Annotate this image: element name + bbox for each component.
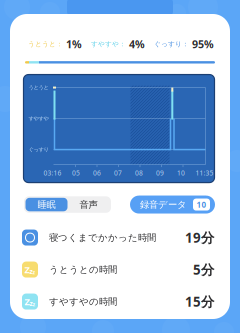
staticText: 03:16 — [43, 169, 61, 177]
staticText: 1% — [66, 37, 82, 51]
staticText: すやすやの時間 — [49, 296, 117, 307]
staticText: 09 — [156, 169, 164, 177]
staticText: 15分 — [185, 293, 214, 310]
staticText: z — [29, 267, 32, 276]
staticText: 05 — [72, 169, 80, 177]
staticText: 07 — [114, 169, 122, 177]
staticText: 4% — [129, 37, 145, 51]
staticText: 録音データ — [140, 199, 187, 210]
staticText: 寝つくまでかかった時間 — [49, 232, 156, 243]
staticText: z — [32, 301, 35, 308]
staticText: Z — [24, 263, 29, 276]
staticText: 19分 — [185, 229, 214, 246]
button[interactable]: Z — [10, 254, 230, 286]
staticText: z — [29, 299, 32, 308]
staticText: Z — [24, 295, 29, 308]
staticText: うとうとの時間 — [49, 264, 117, 275]
staticText: 睡眠 — [37, 199, 55, 210]
staticText: ぐっすり： — [154, 40, 189, 48]
staticText: 10 — [196, 199, 206, 210]
staticText: うとうと — [28, 84, 48, 91]
staticText: 10 — [177, 169, 185, 177]
staticText: 5分 — [193, 261, 214, 278]
staticText: 95% — [192, 37, 214, 51]
staticText: すやすや — [28, 115, 48, 122]
button[interactable]: Z — [10, 286, 230, 318]
staticText: 08 — [135, 169, 143, 177]
staticText: ぐっすり — [28, 146, 48, 153]
staticText: 11:35 — [195, 169, 213, 177]
button[interactable]: 音声 — [67, 198, 109, 211]
button[interactable]: 寝つくまでかかった時間 — [10, 222, 230, 254]
staticText: 音声 — [79, 199, 97, 210]
staticText: 06 — [93, 169, 101, 177]
button[interactable]: 録音データ — [130, 196, 215, 214]
staticText: z — [32, 269, 35, 276]
button[interactable]: 睡眠 — [25, 198, 67, 211]
staticText: うとうと： — [28, 40, 63, 48]
staticText: すやすや： — [91, 40, 126, 48]
